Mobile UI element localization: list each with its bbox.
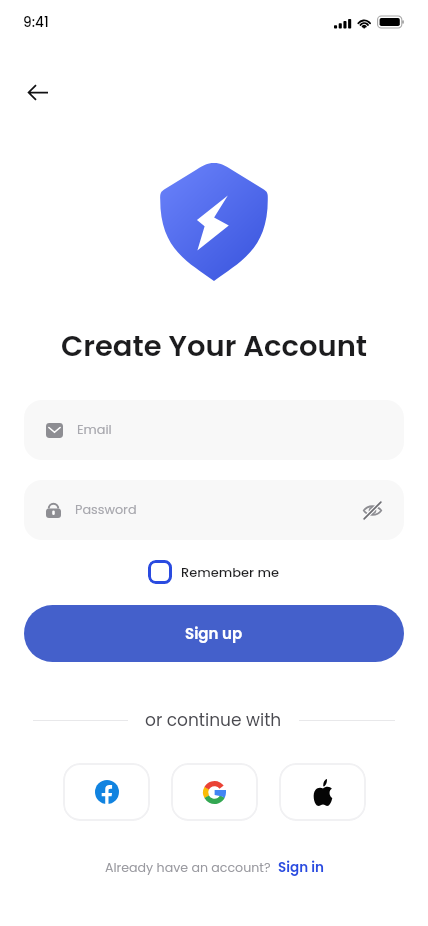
staticText: Password — [75, 501, 137, 519]
staticText: 9:41 — [23, 13, 49, 32]
other: Signal, Wi-Fi and battery status — [334, 15, 404, 29]
button[interactable]: Password — [24, 480, 404, 540]
staticText: Email — [77, 421, 112, 439]
button[interactable]: Show password — [358, 496, 386, 524]
button[interactable]: Sign up with Google — [171, 763, 258, 821]
button[interactable]: Email — [24, 400, 404, 460]
staticText: Sign in — [278, 858, 324, 877]
button[interactable]: Sign up with Apple — [279, 763, 366, 821]
staticText: or continue with — [145, 708, 282, 732]
staticText: Remember me — [181, 563, 280, 581]
button[interactable]: Remember me — [148, 560, 280, 584]
staticText: Already have an account? — [105, 859, 271, 877]
button[interactable]: Sign up — [24, 605, 404, 662]
staticText: Create Your Account — [0, 326, 428, 367]
button[interactable]: Sign in — [278, 858, 324, 877]
button[interactable]: Sign up with Facebook — [63, 763, 150, 821]
staticText: Sign up — [185, 623, 243, 644]
button[interactable]: Back — [18, 73, 57, 112]
